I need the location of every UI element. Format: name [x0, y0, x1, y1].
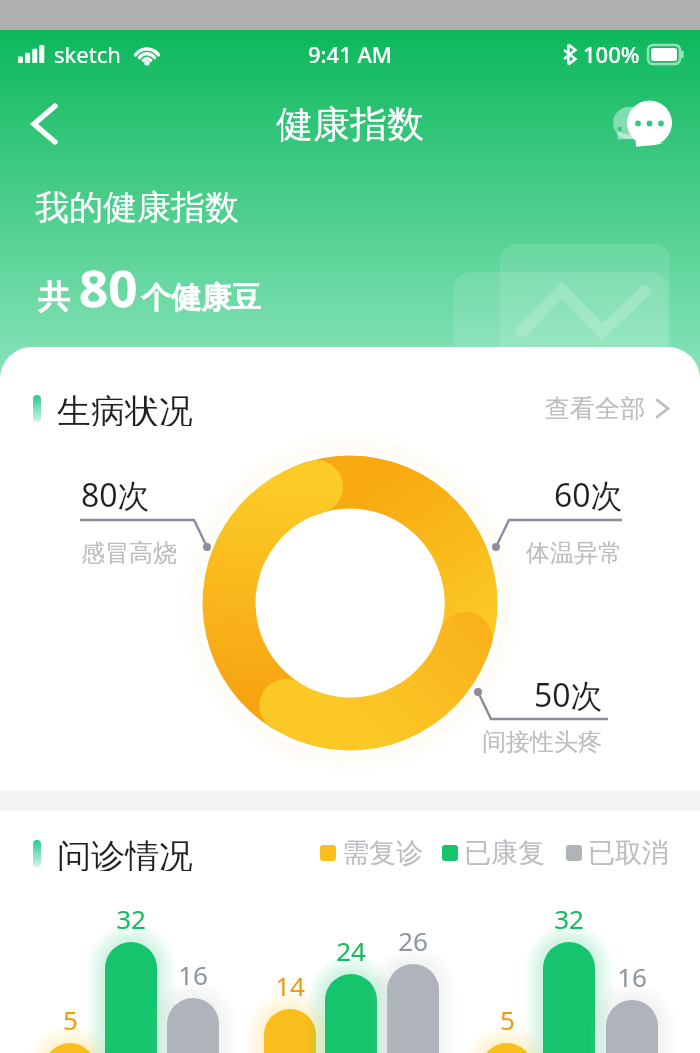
staticText: 个健康豆 — [141, 279, 261, 317]
staticText: 100% — [583, 39, 640, 69]
staticText: 共 — [38, 277, 70, 317]
staticText: 感冒高烧 — [81, 538, 177, 568]
staticText: 我的健康指数 — [35, 186, 239, 229]
button[interactable]: Messages — [613, 92, 677, 156]
staticText: 生病状况 — [57, 390, 193, 426]
button[interactable]: 查看全部 — [545, 393, 669, 424]
staticText: 已取消 — [588, 836, 669, 870]
staticText: 50次 — [534, 673, 603, 717]
staticText: 体温异常 — [526, 538, 622, 568]
staticText: 26 — [398, 923, 428, 958]
staticText: 16 — [617, 959, 647, 994]
staticText: 问诊情况 — [57, 835, 193, 871]
staticText: 间接性头疼 — [482, 727, 602, 757]
staticText: 14 — [275, 968, 305, 1003]
staticText: sketch — [54, 39, 121, 69]
staticText: 9:41 AM — [308, 39, 393, 69]
staticText: 80 — [79, 252, 138, 321]
staticText: 需复诊 — [342, 836, 423, 870]
staticText: 已康复 — [464, 836, 545, 870]
staticText: 32 — [116, 901, 146, 936]
staticText: 24 — [336, 933, 366, 968]
button[interactable]: Back — [16, 96, 72, 152]
staticText: 健康指数 — [276, 101, 424, 148]
staticText: 5 — [63, 1002, 78, 1037]
staticText: 5 — [500, 1002, 515, 1037]
staticText: 60次 — [554, 473, 623, 517]
staticText: 查看全部 — [545, 393, 645, 424]
staticText: 32 — [554, 901, 584, 936]
staticText: 16 — [178, 957, 208, 992]
staticText: 80次 — [81, 473, 150, 517]
